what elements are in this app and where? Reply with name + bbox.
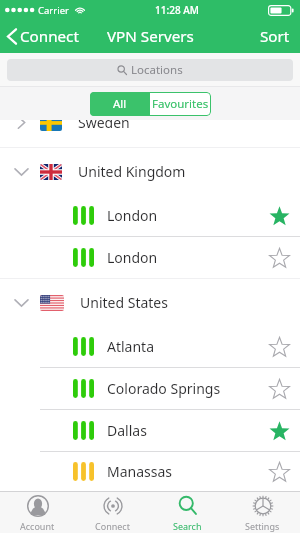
staticText: Colorado Springs bbox=[107, 379, 221, 398]
button[interactable]: London bbox=[0, 237, 300, 278]
button[interactable]: Add to favourites bbox=[259, 452, 299, 491]
staticText: VPN Servers bbox=[107, 26, 194, 47]
staticText: United Kingdom bbox=[78, 162, 186, 181]
staticText: 11:28 AM bbox=[155, 3, 199, 17]
staticText: Connect bbox=[95, 520, 130, 532]
staticText: Sweden bbox=[78, 120, 130, 132]
button[interactable]: Connect bbox=[75, 492, 150, 533]
staticText: Sort bbox=[260, 26, 290, 47]
button[interactable]: Remove from favourites bbox=[259, 410, 299, 451]
button[interactable]: Add to favourites bbox=[259, 368, 299, 409]
button[interactable]: Search bbox=[150, 492, 225, 533]
staticText: Favourites bbox=[152, 96, 209, 112]
button[interactable]: Favourites bbox=[150, 92, 211, 116]
staticText: All bbox=[113, 96, 127, 112]
button[interactable]: London bbox=[0, 195, 300, 236]
button[interactable]: All bbox=[90, 92, 150, 116]
staticText: Account bbox=[20, 520, 55, 532]
button[interactable]: Account bbox=[0, 492, 75, 533]
button[interactable]: Atlanta bbox=[0, 326, 300, 367]
button[interactable]: Remove from favourites bbox=[259, 195, 299, 236]
button[interactable]: Add to favourites bbox=[259, 237, 299, 278]
button[interactable]: Connect bbox=[5, 23, 81, 50]
staticText: London bbox=[107, 248, 158, 267]
staticText: Atlanta bbox=[107, 337, 155, 356]
button[interactable]: United States bbox=[0, 279, 300, 326]
staticText: London bbox=[107, 206, 158, 225]
staticText: Carrier bbox=[38, 4, 69, 17]
staticText: Dallas bbox=[107, 421, 147, 440]
staticText: Manassas bbox=[107, 462, 173, 481]
button[interactable]: Settings bbox=[225, 492, 300, 533]
button[interactable]: United Kingdom bbox=[0, 148, 300, 195]
button[interactable]: Colorado Springs bbox=[0, 368, 300, 409]
button[interactable]: Add to favourites bbox=[259, 326, 299, 367]
button[interactable]: Sort bbox=[258, 22, 292, 51]
staticText: Connect bbox=[20, 26, 79, 47]
staticText: Settings bbox=[245, 520, 280, 532]
staticText: United States bbox=[80, 293, 168, 312]
button[interactable]: Sweden bbox=[0, 120, 300, 146]
button[interactable]: Manassas bbox=[0, 452, 300, 491]
staticText: Search bbox=[173, 520, 202, 532]
button[interactable]: Locations bbox=[7, 59, 293, 81]
button[interactable]: Dallas bbox=[0, 410, 300, 451]
staticText: Locations bbox=[131, 62, 183, 78]
